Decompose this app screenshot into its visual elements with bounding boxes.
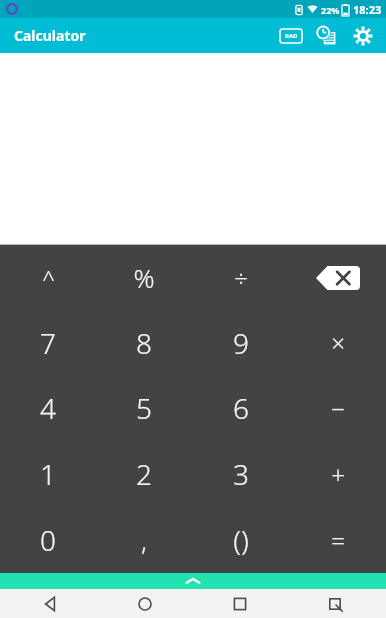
button[interactable]: −: [289, 375, 386, 441]
staticText: 3: [233, 455, 249, 493]
button[interactable]: ÷: [192, 245, 289, 310]
staticText: 4: [40, 389, 56, 427]
button[interactable]: 5: [96, 375, 192, 441]
staticText: 0: [40, 521, 56, 559]
button[interactable]: 9: [192, 310, 289, 375]
button[interactable]: (): [192, 507, 289, 573]
staticText: (): [233, 521, 249, 559]
staticText: ,: [141, 523, 147, 558]
button[interactable]: Angle unit radians: [280, 29, 302, 43]
staticText: ^: [42, 263, 55, 293]
button[interactable]: %: [96, 245, 192, 310]
button[interactable]: Settings: [350, 23, 376, 49]
button[interactable]: +: [289, 441, 386, 507]
button[interactable]: ,: [96, 507, 192, 573]
button[interactable]: ×: [289, 310, 386, 375]
staticText: 18:23: [353, 2, 382, 17]
staticText: +: [331, 458, 345, 491]
button[interactable]: Expand: [0, 573, 386, 589]
staticText: =: [331, 524, 345, 557]
staticText: −: [331, 392, 345, 425]
staticText: ÷: [234, 261, 248, 294]
button[interactable]: History: [314, 23, 340, 49]
button[interactable]: Backspace: [289, 245, 386, 310]
button[interactable]: Recent apps: [225, 589, 255, 618]
staticText: %: [133, 260, 155, 295]
button[interactable]: Screenshot: [320, 589, 350, 618]
staticText: 22%: [321, 4, 340, 16]
button[interactable]: Home: [130, 589, 160, 618]
button[interactable]: ^: [0, 245, 96, 310]
button[interactable]: 0: [0, 507, 96, 573]
staticText: RAD: [285, 32, 298, 40]
button[interactable]: Back: [35, 589, 65, 618]
staticText: 9: [233, 324, 249, 362]
button[interactable]: 6: [192, 375, 289, 441]
staticText: 2: [136, 455, 152, 493]
staticText: 7: [40, 324, 56, 362]
button[interactable]: 1: [0, 441, 96, 507]
staticText: 1: [40, 455, 56, 493]
staticText: ×: [331, 326, 345, 359]
button[interactable]: =: [289, 507, 386, 573]
staticText: 8: [136, 324, 152, 362]
button[interactable]: 4: [0, 375, 96, 441]
button[interactable]: 8: [96, 310, 192, 375]
button[interactable]: 3: [192, 441, 289, 507]
button[interactable]: 7: [0, 310, 96, 375]
staticText: 5: [136, 389, 152, 427]
staticText: Calculator: [14, 26, 86, 45]
button[interactable]: 2: [96, 441, 192, 507]
staticText: 6: [233, 389, 249, 427]
